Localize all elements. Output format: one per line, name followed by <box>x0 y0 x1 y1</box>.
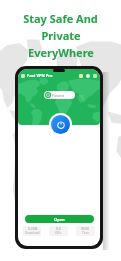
button[interactable]: Connect <box>49 113 72 136</box>
staticText: Private <box>41 28 81 43</box>
button[interactable]: Account <box>86 74 90 78</box>
staticText: 0.0 <box>56 227 61 231</box>
staticText: 0.0 KB <box>28 227 38 231</box>
staticText: Download <box>25 231 40 235</box>
staticText: Stay Safe And <box>23 11 98 26</box>
staticText: 00:00 <box>81 227 90 231</box>
staticText: EveryWhere <box>28 45 94 60</box>
staticText: KB/s <box>55 231 62 235</box>
button[interactable]: 0.0 <box>49 226 68 236</box>
button[interactable]: Premium <box>79 74 83 78</box>
button[interactable]: 00:00 <box>76 226 95 236</box>
staticText: Time <box>82 231 89 235</box>
button[interactable]: Menu <box>93 74 97 78</box>
button[interactable]: Fastest Server <box>44 91 75 99</box>
button[interactable]: Open <box>25 215 94 223</box>
button[interactable]: 0.0 KB <box>23 226 41 236</box>
staticText: Open <box>54 217 65 222</box>
staticText: Fast VPN Pro <box>27 73 53 78</box>
staticText: Fastest Server <box>52 93 73 98</box>
